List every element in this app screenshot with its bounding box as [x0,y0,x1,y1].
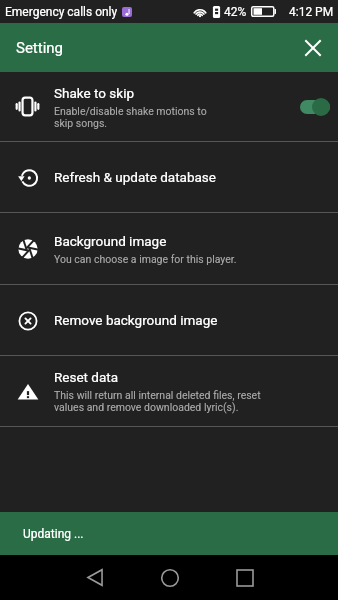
staticText: Reset data [54,369,119,385]
staticText: This will return all internal deleted fi… [54,389,262,413]
staticText: 4:12 PM [289,5,334,19]
button[interactable]: Recents [222,555,267,600]
staticText: Emergency calls only [5,5,118,19]
staticText: Background image [54,233,167,249]
staticText: Updating ... [23,527,84,541]
button[interactable]: Shake to skip toggle [300,97,330,117]
button[interactable]: Reset data [0,356,338,426]
button[interactable]: Refresh & update database [0,142,338,212]
staticText: Shake to skip [54,85,135,101]
button[interactable]: Shake to skip [0,72,338,141]
staticText: You can choose a image for this player. [54,253,237,265]
button[interactable]: Close [293,28,333,68]
staticText: Enable/disable shake motions to skip son… [54,105,209,129]
button[interactable]: Remove background image [0,285,338,355]
button[interactable]: Home [147,555,192,600]
button[interactable]: Background image [0,213,338,284]
staticText: Remove background image [54,312,218,328]
button[interactable]: Back [72,555,117,600]
staticText: Refresh & update database [54,169,216,185]
staticText: 42% [224,5,247,19]
button[interactable]: Updating ... [0,512,338,555]
staticText: Setting [16,39,64,57]
